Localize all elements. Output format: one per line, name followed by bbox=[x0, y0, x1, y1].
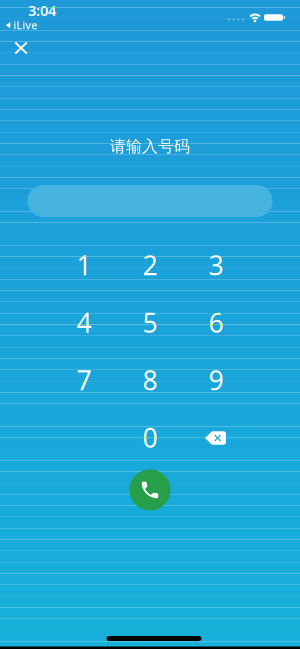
staticText: 请输入号码 bbox=[110, 137, 190, 156]
button[interactable]: 8 bbox=[122, 356, 178, 404]
button[interactable]: Call bbox=[129, 469, 170, 510]
button[interactable]: Close bbox=[15, 42, 27, 53]
button[interactable]: 6 bbox=[188, 298, 244, 346]
staticText: 7 bbox=[76, 362, 91, 398]
staticText: 9 bbox=[208, 362, 223, 398]
staticText: 4 bbox=[76, 305, 91, 340]
button[interactable]: 7 bbox=[56, 356, 112, 404]
button[interactable]: 5 bbox=[122, 298, 178, 346]
staticText: 0 bbox=[142, 420, 157, 455]
button[interactable]: 0 bbox=[122, 413, 178, 461]
staticText: 5 bbox=[142, 305, 157, 340]
button[interactable]: 3 bbox=[188, 241, 244, 289]
staticText: 8 bbox=[142, 362, 157, 398]
staticText: 6 bbox=[208, 305, 223, 340]
staticText: 1 bbox=[76, 247, 91, 283]
button[interactable]: 2 bbox=[122, 241, 178, 289]
staticText: 3:04 bbox=[28, 1, 56, 20]
button[interactable]: 1 bbox=[56, 241, 112, 289]
button[interactable]: Delete bbox=[205, 431, 226, 445]
staticText: iLive bbox=[13, 18, 37, 32]
staticText: 2 bbox=[142, 247, 157, 283]
staticText: 3 bbox=[208, 247, 223, 283]
button[interactable]: 4 bbox=[56, 298, 112, 346]
button[interactable]: 9 bbox=[188, 356, 244, 404]
